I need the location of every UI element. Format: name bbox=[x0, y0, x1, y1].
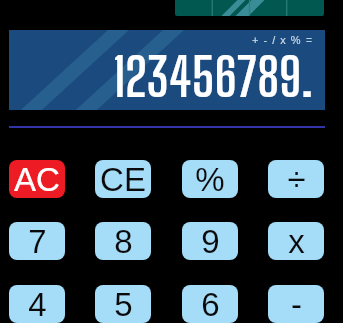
staticText: AC bbox=[14, 161, 60, 198]
button[interactable]: 5 bbox=[95, 285, 151, 323]
staticText: x bbox=[288, 223, 305, 260]
button[interactable]: - bbox=[268, 285, 324, 323]
button[interactable]: 4 bbox=[9, 285, 65, 323]
button[interactable]: CE bbox=[95, 160, 151, 198]
button[interactable]: 9 bbox=[182, 222, 238, 260]
button[interactable]: % bbox=[182, 160, 238, 198]
button[interactable]: 8 bbox=[95, 222, 151, 260]
staticText: % bbox=[195, 161, 225, 198]
staticText: 4 bbox=[28, 286, 47, 323]
button[interactable]: AC bbox=[9, 160, 65, 198]
button[interactable]: 6 bbox=[182, 285, 238, 323]
staticText: CE bbox=[100, 161, 146, 198]
button[interactable]: ÷ bbox=[268, 160, 324, 198]
staticText: 123456789. bbox=[113, 45, 314, 108]
staticText: ÷ bbox=[287, 161, 306, 198]
staticText: 9 bbox=[201, 223, 220, 260]
button[interactable]: 7 bbox=[9, 222, 65, 260]
staticText: 5 bbox=[114, 286, 133, 323]
button[interactable]: x bbox=[268, 222, 324, 260]
staticText: + - / x % = bbox=[252, 34, 314, 46]
staticText: 7 bbox=[28, 223, 47, 260]
staticText: - bbox=[291, 286, 302, 323]
staticText: 6 bbox=[201, 286, 220, 323]
staticText: 8 bbox=[114, 223, 133, 260]
